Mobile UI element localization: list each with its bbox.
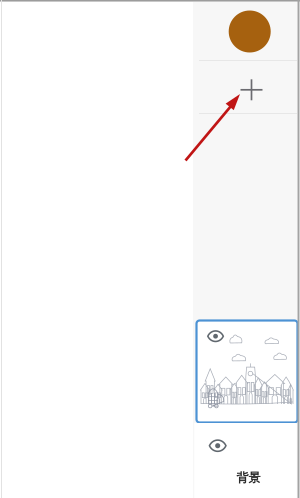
button[interactable]: Layer 1, selected [196,320,297,422]
staticText: 背景 [237,470,261,485]
button[interactable]: Background layer [194,423,297,498]
button[interactable]: Add layer [193,61,297,113]
button[interactable]: Current colour [193,0,297,60]
